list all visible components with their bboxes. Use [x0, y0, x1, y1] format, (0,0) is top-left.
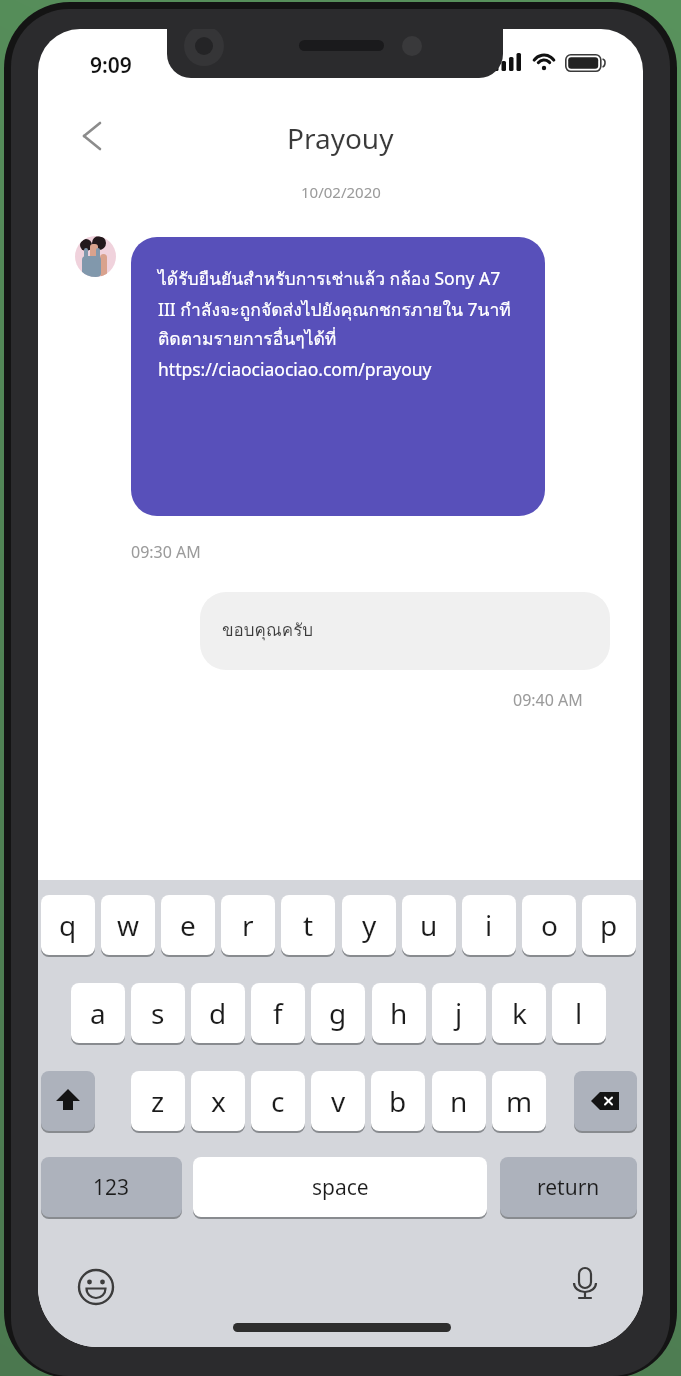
- staticText: w: [117, 906, 140, 944]
- staticText: v: [331, 1082, 346, 1120]
- button[interactable]: b: [371, 1071, 425, 1131]
- staticText: 09:30 AM: [131, 541, 201, 563]
- button[interactable]: ขอบคุณครับ: [200, 592, 610, 670]
- staticText: ได้รับยืนยันสำหรับการเช่าแล้ว กล้อง Sony…: [158, 265, 528, 381]
- button[interactable]: 123: [41, 1157, 182, 1217]
- button[interactable]: h: [372, 983, 426, 1043]
- staticText: c: [271, 1082, 285, 1120]
- button[interactable]: return: [500, 1157, 637, 1217]
- staticText: p: [600, 906, 618, 944]
- button[interactable]: [566, 1266, 604, 1304]
- staticText: q: [59, 906, 77, 944]
- staticText: a: [90, 994, 106, 1032]
- staticText: k: [512, 994, 527, 1032]
- staticText: x: [211, 1082, 226, 1120]
- button[interactable]: [41, 1071, 95, 1131]
- button[interactable]: w: [101, 895, 155, 955]
- button[interactable]: o: [522, 895, 576, 955]
- staticText: s: [151, 994, 165, 1032]
- staticText: l: [575, 994, 583, 1032]
- button[interactable]: c: [251, 1071, 305, 1131]
- staticText: 10/02/2020: [301, 182, 381, 202]
- staticText: f: [273, 994, 283, 1032]
- button[interactable]: s: [131, 983, 185, 1043]
- button[interactable]: p: [582, 895, 636, 955]
- button[interactable]: z: [131, 1071, 185, 1131]
- button[interactable]: d: [191, 983, 245, 1043]
- staticText: g: [329, 994, 347, 1032]
- staticText: e: [180, 906, 196, 944]
- button[interactable]: x: [191, 1071, 245, 1131]
- staticText: m: [506, 1082, 533, 1120]
- button[interactable]: t: [281, 895, 335, 955]
- button[interactable]: [76, 117, 114, 155]
- button[interactable]: y: [342, 895, 396, 955]
- button[interactable]: g: [311, 983, 365, 1043]
- staticText: return: [537, 1173, 600, 1202]
- staticText: 123: [93, 1173, 130, 1202]
- staticText: space: [312, 1173, 369, 1202]
- button[interactable]: j: [432, 983, 486, 1043]
- staticText: o: [541, 906, 558, 944]
- staticText: ขอบคุณครับ: [222, 616, 314, 643]
- button[interactable]: [574, 1071, 637, 1131]
- staticText: b: [389, 1082, 407, 1120]
- staticText: n: [450, 1082, 468, 1120]
- button[interactable]: v: [311, 1071, 365, 1131]
- button[interactable]: space: [193, 1157, 487, 1217]
- button[interactable]: n: [432, 1071, 486, 1131]
- staticText: 09:40 AM: [513, 689, 583, 711]
- button[interactable]: [77, 1268, 115, 1306]
- staticText: j: [455, 994, 463, 1032]
- button[interactable]: u: [402, 895, 456, 955]
- button[interactable]: e: [161, 895, 215, 955]
- staticText: d: [209, 994, 227, 1032]
- button[interactable]: f: [251, 983, 305, 1043]
- staticText: Prayouy: [287, 119, 394, 157]
- staticText: t: [303, 906, 314, 944]
- button[interactable]: ได้รับยืนยันสำหรับการเช่าแล้ว กล้อง Sony…: [131, 237, 545, 516]
- button[interactable]: a: [71, 983, 125, 1043]
- staticText: z: [151, 1082, 165, 1120]
- button[interactable]: m: [492, 1071, 546, 1131]
- button[interactable]: l: [552, 983, 606, 1043]
- staticText: y: [362, 906, 377, 944]
- button[interactable]: q: [41, 895, 95, 955]
- staticText: u: [420, 906, 438, 944]
- staticText: 9:09: [90, 51, 132, 80]
- staticText: i: [485, 906, 493, 944]
- staticText: r: [242, 906, 254, 944]
- staticText: h: [390, 994, 408, 1032]
- button[interactable]: k: [492, 983, 546, 1043]
- button[interactable]: r: [221, 895, 275, 955]
- button[interactable]: i: [462, 895, 516, 955]
